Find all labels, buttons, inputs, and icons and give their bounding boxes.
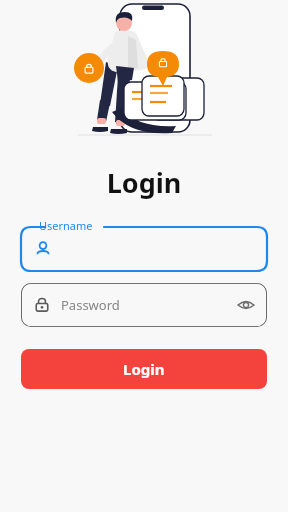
button[interactable]: Show password [236,295,256,315]
button[interactable]: Login [21,349,267,389]
staticText: Login [123,359,165,379]
staticText: Password [61,296,120,314]
staticText: Login [0,164,288,201]
button[interactable]: Username [21,219,267,271]
button[interactable]: Password [21,283,267,327]
staticText: Username [39,218,93,233]
